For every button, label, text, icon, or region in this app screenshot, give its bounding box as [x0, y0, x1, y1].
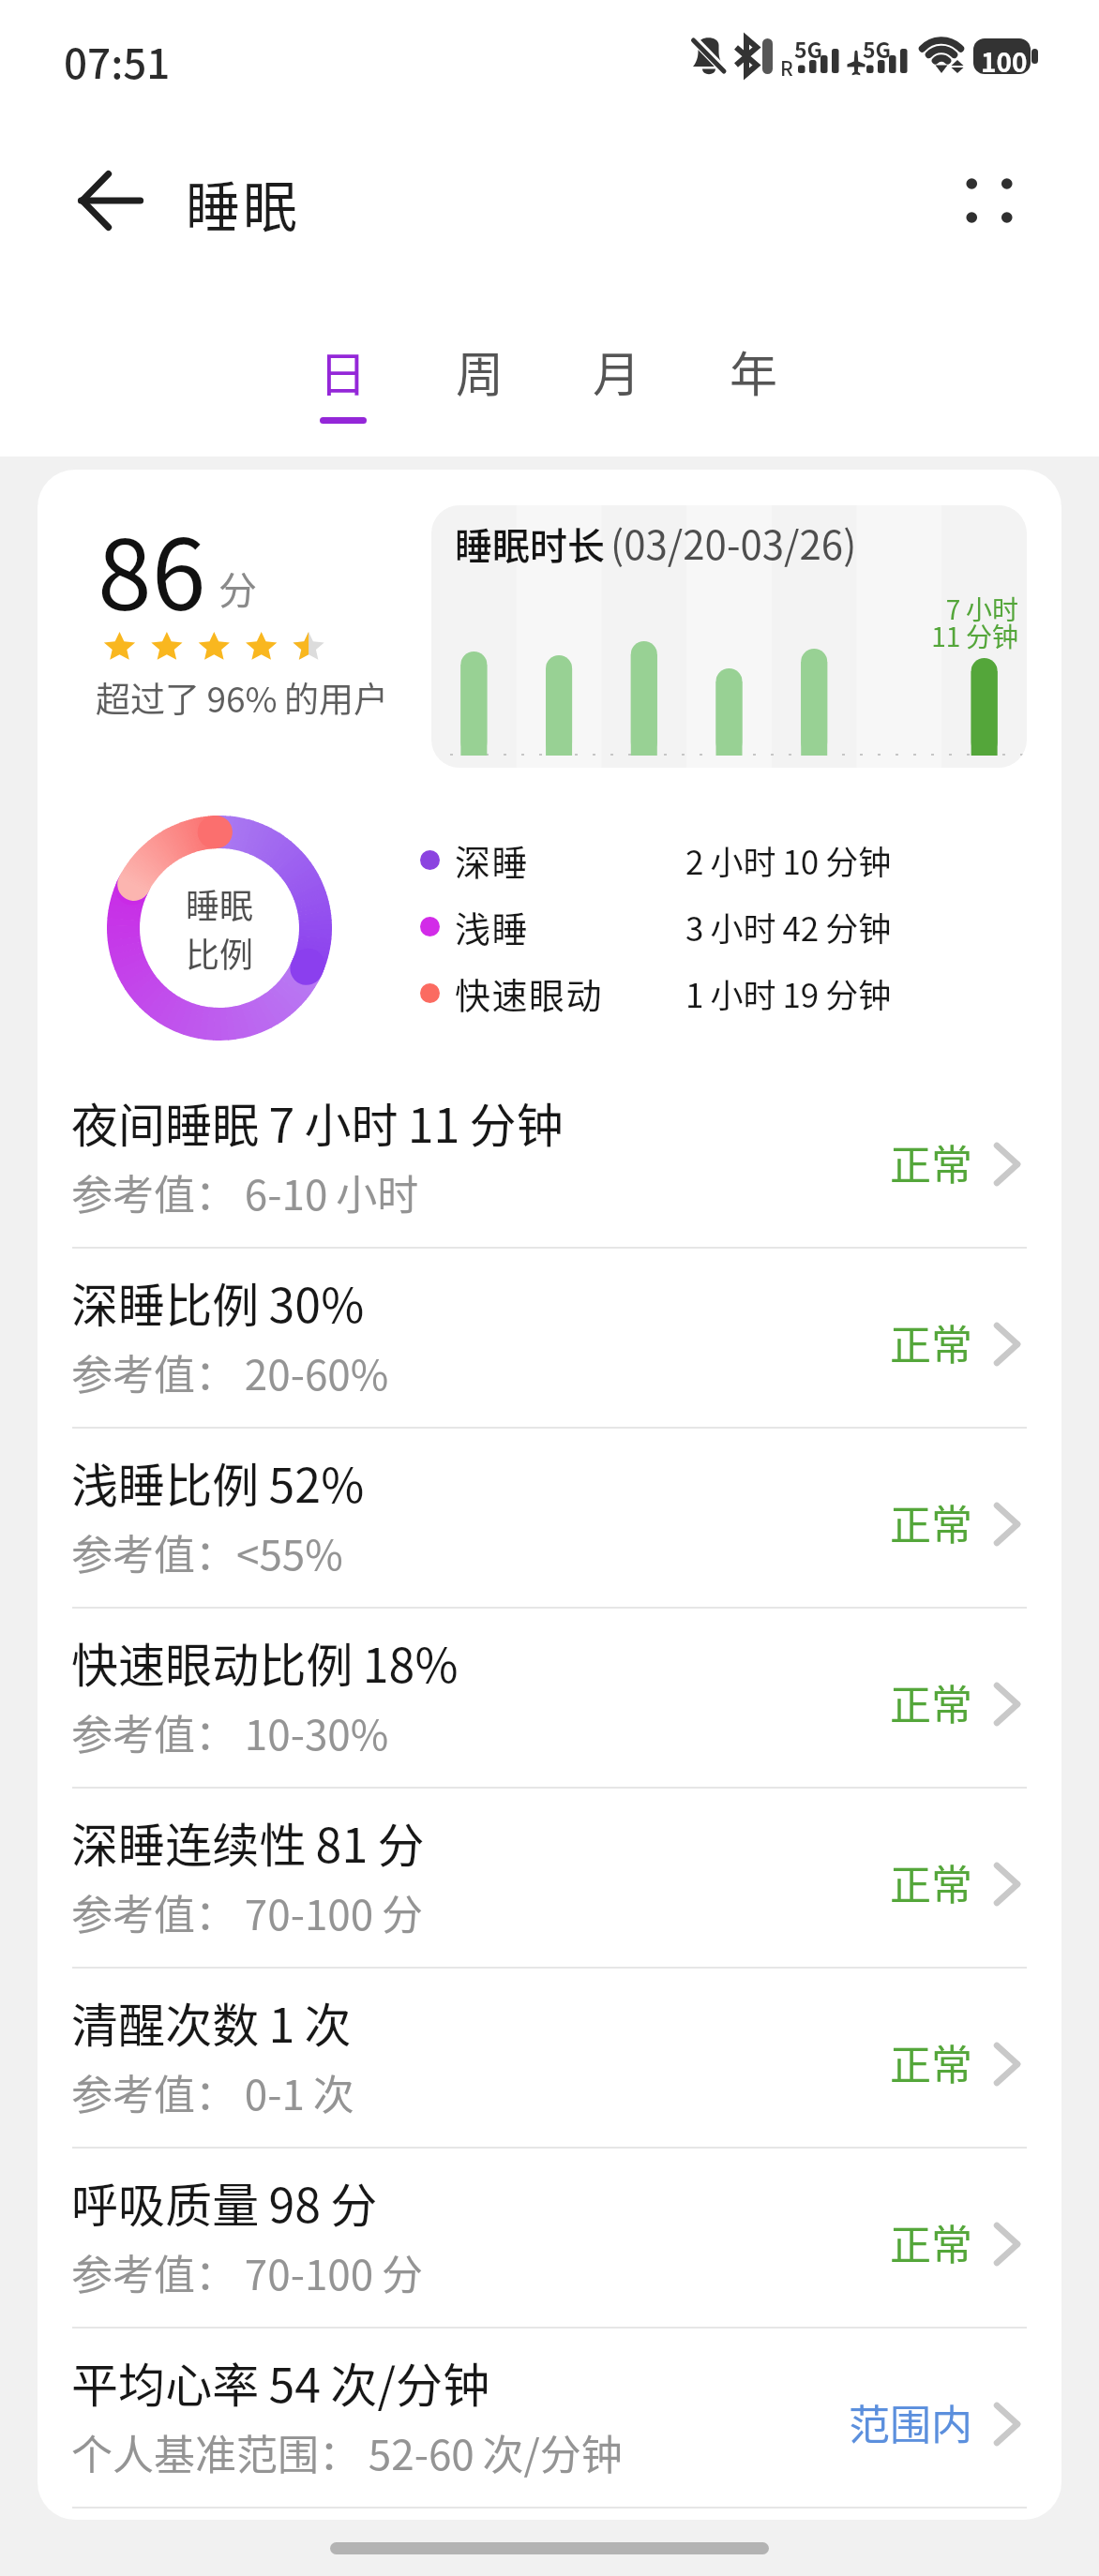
- staticText: 夜间睡眠 7 小时 11 分钟: [71, 1088, 564, 1156]
- staticText: 清醒次数 1 次: [71, 1988, 352, 2056]
- staticText: 正常: [731, 2212, 972, 2272]
- button[interactable]: 周: [422, 337, 538, 442]
- staticText: 分: [218, 560, 257, 615]
- button[interactable]: 夜间睡眠 7 小时 11 分钟: [38, 1069, 1061, 1249]
- staticText: 周: [456, 337, 504, 406]
- staticText: 深睡连续性 81 分: [71, 1808, 425, 1876]
- staticText: 3 小时 42 分钟: [685, 903, 892, 951]
- staticText: 正常: [731, 2032, 972, 2092]
- staticText: 2 小时 10 分钟: [685, 836, 892, 884]
- button[interactable]: 深睡比例 30%: [38, 1249, 1061, 1429]
- button[interactable]: More options: [944, 156, 1034, 246]
- staticText: 参考值： 10-30%: [71, 1702, 389, 1762]
- staticText: 参考值： 6-10 小时: [71, 1162, 419, 1222]
- staticText: 比例: [186, 928, 254, 977]
- staticText: 参考值： 70-100 分: [71, 1882, 423, 1942]
- staticText: 5G: [794, 33, 823, 64]
- staticText: R: [780, 53, 793, 82]
- button[interactable]: 平均心率 54 次/分钟: [38, 2329, 1061, 2509]
- staticText: 86: [98, 497, 206, 638]
- staticText: 平均心率 54 次/分钟: [71, 2348, 490, 2416]
- staticText: 浅睡比例 52%: [71, 1448, 365, 1516]
- staticText: 1 小时 19 分钟: [685, 969, 892, 1017]
- button[interactable]: Back: [65, 156, 155, 246]
- staticText: 正常: [731, 1312, 972, 1372]
- button[interactable]: 年: [696, 337, 812, 442]
- button[interactable]: 浅睡比例 52%: [38, 1429, 1061, 1609]
- staticText: 100: [981, 42, 1028, 81]
- staticText: 参考值： 0-1 次: [71, 2062, 354, 2122]
- staticText: 睡眠时长: [455, 517, 605, 571]
- staticText: 睡眠: [186, 164, 301, 243]
- staticText: 参考值： 20-60%: [71, 1342, 389, 1402]
- button[interactable]: 日: [285, 337, 401, 442]
- staticText: 睡眠: [186, 879, 254, 928]
- button[interactable]: 快速眼动比例 18%: [38, 1609, 1061, 1789]
- staticText: 正常: [731, 1672, 972, 1732]
- staticText: (03/20-03/26): [610, 514, 857, 571]
- staticText: 日: [319, 337, 368, 406]
- staticText: 7 小时 11 分钟: [888, 590, 1018, 654]
- staticText: 快速眼动比例 18%: [71, 1628, 459, 1696]
- staticText: 参考值：<55%: [71, 1522, 343, 1582]
- staticText: 浅睡: [455, 901, 530, 952]
- staticText: 07:51: [64, 31, 171, 91]
- staticText: 超过了 96% 的用户: [96, 672, 388, 723]
- staticText: 年: [730, 337, 778, 406]
- staticText: 深睡: [455, 834, 530, 886]
- staticText: 深睡比例 30%: [71, 1268, 365, 1336]
- staticText: 呼吸质量 98 分: [71, 2168, 378, 2236]
- button[interactable]: 深睡连续性 81 分: [38, 1789, 1061, 1969]
- staticText: 个人基准范围： 52-60 次/分钟: [71, 2422, 623, 2482]
- button[interactable]: 清醒次数 1 次: [38, 1969, 1061, 2149]
- staticText: 正常: [731, 1852, 972, 1912]
- staticText: 正常: [731, 1132, 972, 1192]
- button[interactable]: 月: [559, 337, 675, 442]
- staticText: 范围内: [731, 2392, 972, 2452]
- staticText: 参考值： 70-100 分: [71, 2242, 423, 2302]
- staticText: 快速眼动: [455, 967, 604, 1019]
- staticText: 正常: [731, 1492, 972, 1552]
- staticText: 月: [593, 337, 641, 406]
- staticText: 5G: [863, 33, 892, 64]
- button[interactable]: 呼吸质量 98 分: [38, 2149, 1061, 2329]
